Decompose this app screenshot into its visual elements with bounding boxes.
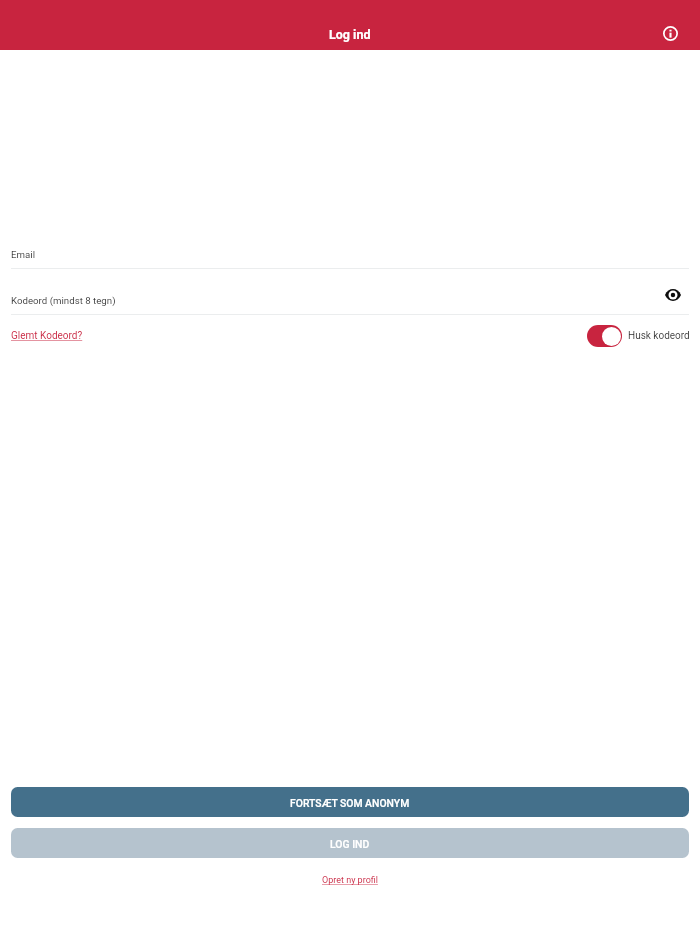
- button[interactable]: Show password: [662, 284, 684, 306]
- staticText: Glemt Kodeord?: [11, 330, 83, 342]
- button[interactable]: Opret ny profil: [322, 875, 378, 886]
- button[interactable]: Glemt Kodeord?: [11, 330, 83, 342]
- button[interactable]: Info: [655, 18, 686, 49]
- staticText: Email: [11, 249, 35, 260]
- button[interactable]: Husk kodeord: [587, 325, 690, 347]
- staticText: Log ind: [329, 27, 371, 42]
- button[interactable]: LOG IND: [11, 828, 689, 858]
- button[interactable]: FORTSÆT SOM ANONYM: [11, 787, 689, 817]
- staticText: FORTSÆT SOM ANONYM: [290, 797, 410, 809]
- staticText: Husk kodeord: [628, 330, 690, 342]
- staticText: Kodeord (mindst 8 tegn): [11, 295, 116, 306]
- button[interactable]: [11, 240, 689, 268]
- staticText: LOG IND: [330, 838, 370, 850]
- button[interactable]: [11, 287, 689, 315]
- staticText: Opret ny profil: [322, 875, 378, 886]
